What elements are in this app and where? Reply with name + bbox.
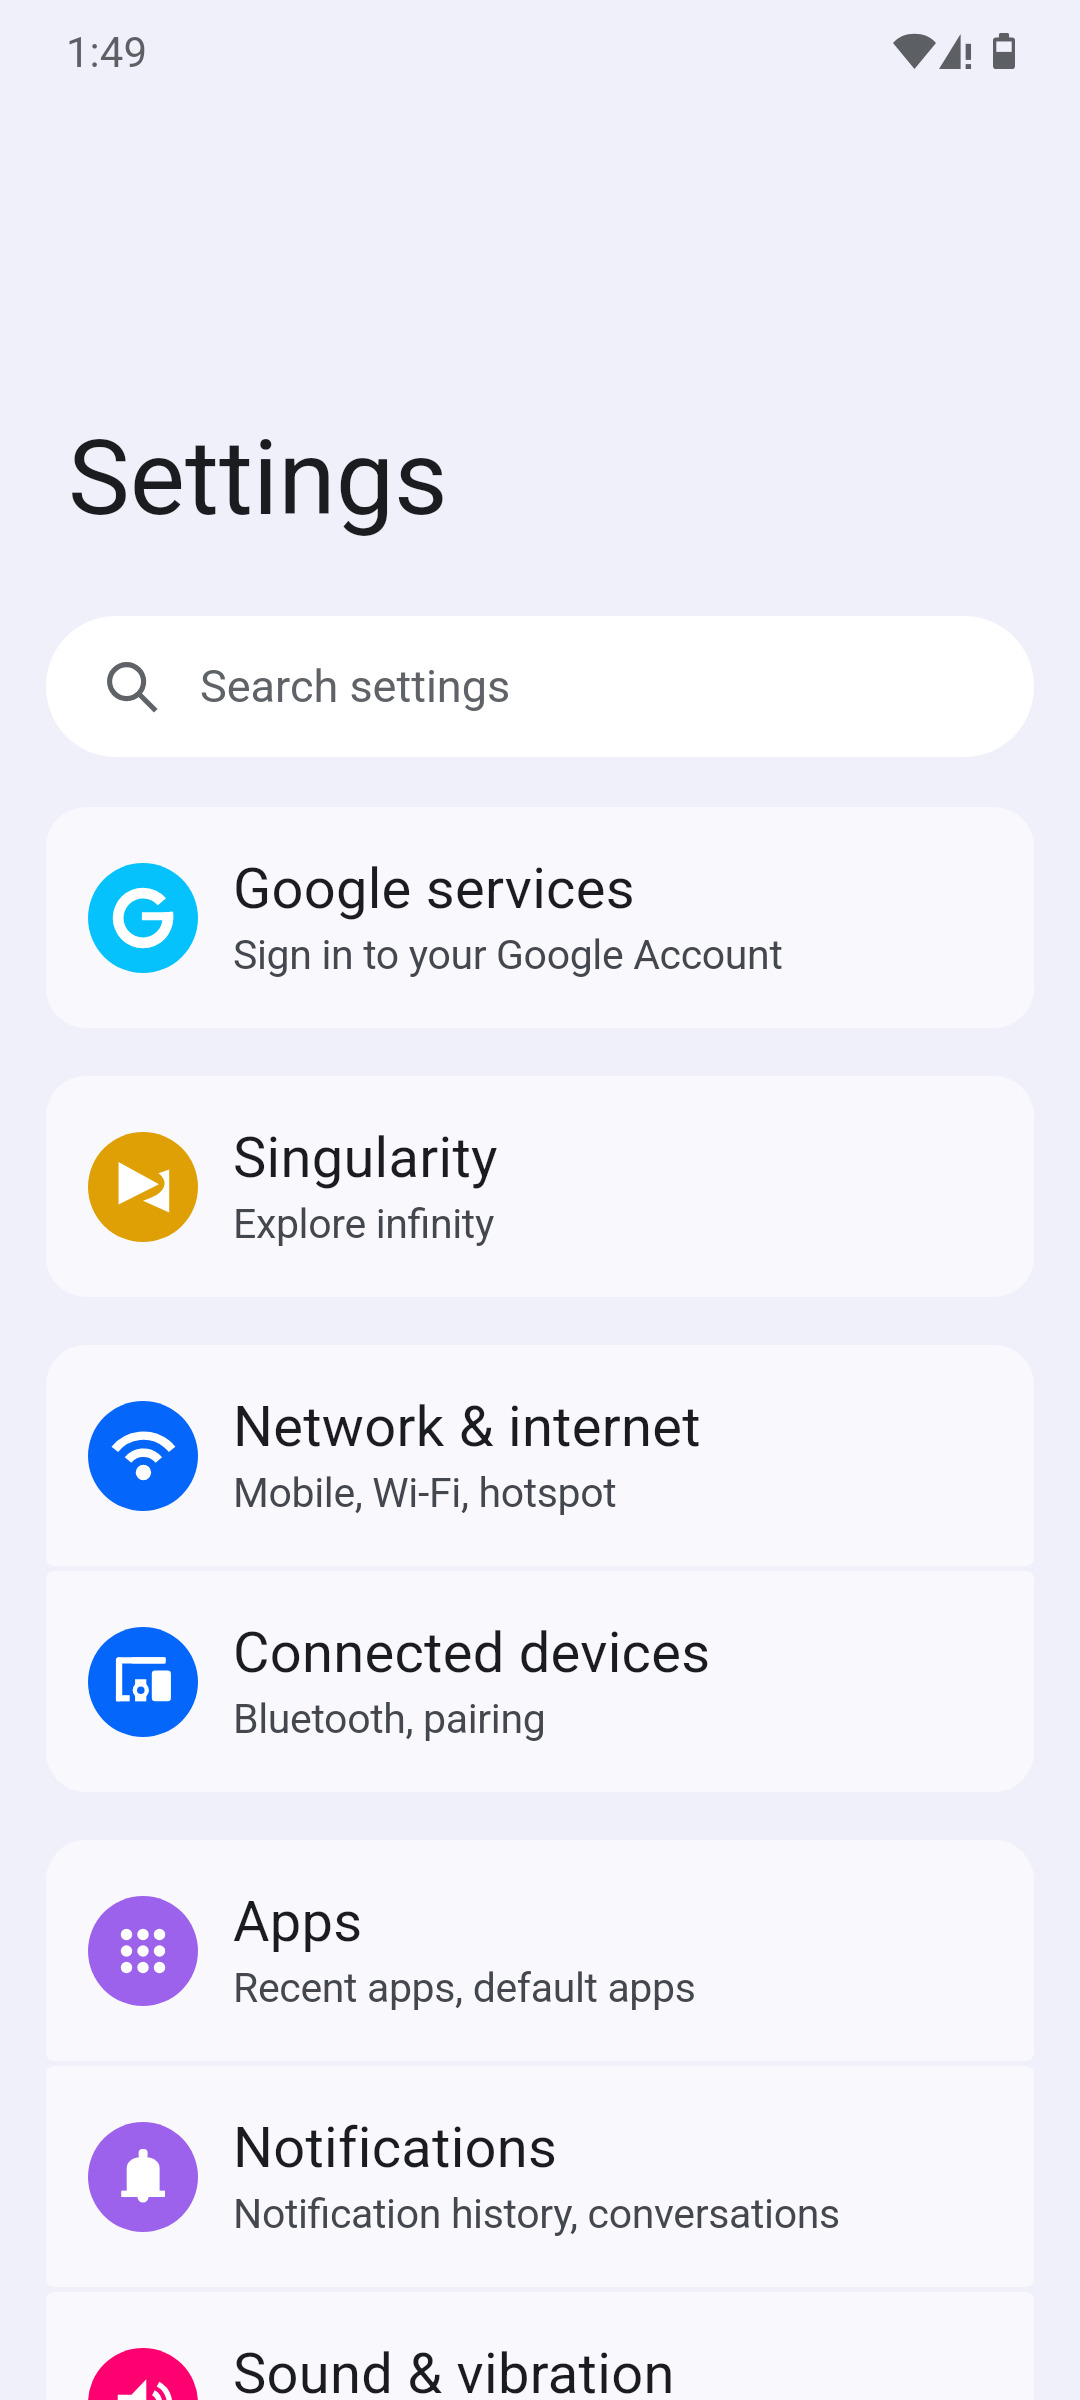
button[interactable]: Search settings xyxy=(46,616,1034,757)
other: Battery xyxy=(993,33,1015,69)
staticText: Explore infinity xyxy=(233,1200,494,1248)
button[interactable]: Google services xyxy=(46,807,1034,1028)
staticText: Connected devices xyxy=(233,1620,711,1686)
other: Wi-Fi xyxy=(893,34,936,69)
staticText: Search settings xyxy=(200,660,511,713)
staticText: Sound & vibration xyxy=(233,2341,675,2400)
button[interactable]: Apps xyxy=(46,1840,1034,2061)
staticText: Notifications xyxy=(233,2115,558,2181)
button[interactable]: Notifications xyxy=(46,2066,1034,2287)
staticText: Sign in to your Google Account xyxy=(233,931,783,979)
staticText: Settings xyxy=(68,418,448,540)
button[interactable]: Connected devices xyxy=(46,1571,1034,1792)
other: Mobile signal xyxy=(939,34,975,69)
staticText: 1:49 xyxy=(66,28,147,77)
staticText: Mobile, Wi-Fi, hotspot xyxy=(233,1469,617,1517)
staticText: Recent apps, default apps xyxy=(233,1964,696,2012)
staticText: Network & internet xyxy=(233,1394,701,1460)
button[interactable]: Network & internet xyxy=(46,1345,1034,1566)
staticText: Notification history, conversations xyxy=(233,2190,840,2238)
staticText: Bluetooth, pairing xyxy=(233,1695,546,1743)
staticText: Apps xyxy=(233,1889,363,1955)
button[interactable]: Singularity xyxy=(46,1076,1034,1297)
staticText: Singularity xyxy=(233,1125,498,1191)
staticText: Google services xyxy=(233,856,635,922)
button[interactable]: Sound & vibration xyxy=(46,2292,1034,2400)
